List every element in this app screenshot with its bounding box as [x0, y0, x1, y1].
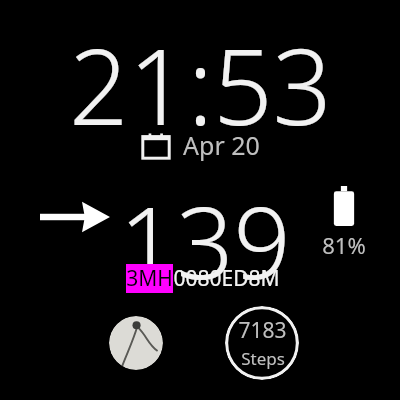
button[interactable]: Calendar: [141, 128, 260, 162]
staticText: 7183: [238, 316, 287, 345]
button[interactable]: Battery: [312, 186, 376, 260]
button[interactable]: 3MH: [126, 264, 280, 293]
staticText: Steps: [241, 347, 285, 370]
other: Battery: [331, 186, 357, 226]
button[interactable]: 7183: [225, 306, 299, 380]
staticText: 21:53: [69, 14, 332, 156]
other: Calendar: [141, 130, 171, 160]
other: Direction: [40, 198, 110, 236]
staticText: 0080ED8M: [173, 264, 280, 293]
staticText: 3MH: [126, 264, 173, 293]
staticText: 81%: [322, 230, 366, 260]
button[interactable]: Map: [109, 316, 163, 370]
staticText: 139: [119, 172, 291, 308]
staticText: Apr 20: [183, 128, 260, 162]
